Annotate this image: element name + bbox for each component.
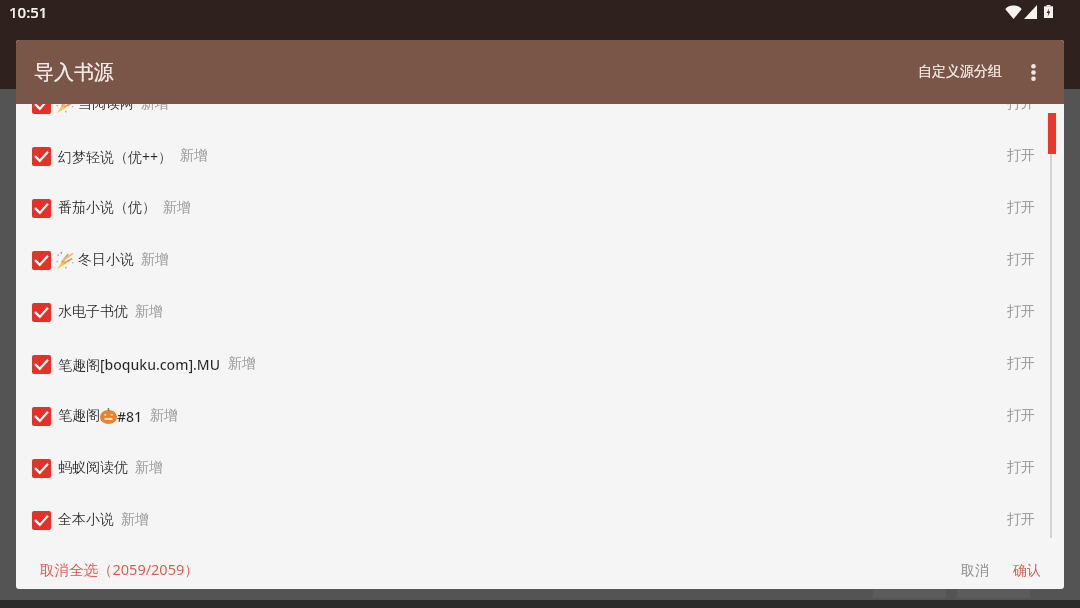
button[interactable]: 打开	[993, 104, 1049, 122]
button[interactable]: 自定义源分组	[903, 47, 1010, 97]
button[interactable]: 幻梦轻说（优++）	[16, 130, 1064, 182]
staticText: 打开	[1007, 147, 1035, 165]
staticText: 打开	[1007, 355, 1035, 373]
button[interactable]: 水电子书优	[16, 286, 1064, 338]
button[interactable]: 取消	[949, 552, 1001, 589]
button[interactable]: 确认	[1001, 552, 1053, 589]
staticText: 10:51	[9, 2, 48, 22]
staticText: 导入书源	[34, 60, 114, 85]
staticText: 打开	[1007, 104, 1035, 113]
staticText: 水电子书优	[58, 303, 128, 321]
staticText: 新增	[141, 104, 169, 113]
staticText: 番茄小说（优）	[58, 199, 156, 217]
button[interactable]: 蚂蚁阅读优	[16, 442, 1064, 494]
staticText: 全本小说	[58, 511, 114, 529]
staticText: 冬日小说	[78, 251, 134, 269]
staticText: 当阅读网	[78, 104, 134, 113]
button[interactable]: 打开	[993, 502, 1049, 538]
button[interactable]: 当阅读网	[16, 104, 1064, 130]
staticText: 新增	[180, 147, 208, 165]
staticText: 笔趣阁	[58, 407, 100, 425]
staticText: 笔趣阁[boquku.com].MU	[58, 355, 221, 374]
button[interactable]: 取消全选（2059/2059）	[16, 549, 223, 589]
staticText: 蚂蚁阅读优	[58, 459, 128, 477]
staticText: 新增	[228, 355, 256, 373]
staticText: 新增	[135, 459, 163, 477]
staticText: 新增	[141, 251, 169, 269]
staticText: 新增	[163, 199, 191, 217]
staticText: 新增	[135, 303, 163, 321]
button[interactable]: 笔趣阁	[16, 390, 1064, 442]
button[interactable]: 打开	[993, 138, 1049, 174]
button[interactable]: 打开	[993, 346, 1049, 382]
button[interactable]: 打开	[993, 450, 1049, 486]
staticText: 打开	[1007, 511, 1035, 529]
staticText: #81	[117, 407, 143, 426]
button[interactable]: 打开	[993, 190, 1049, 226]
button[interactable]: 笔趣阁[boquku.com].MU	[16, 338, 1064, 390]
staticText: 新增	[121, 511, 149, 529]
button[interactable]: 冬日小说	[16, 234, 1064, 286]
button[interactable]: 打开	[993, 294, 1049, 330]
button[interactable]: 打开	[993, 398, 1049, 434]
button[interactable]: 全本小说	[16, 494, 1064, 546]
staticText: 打开	[1007, 199, 1035, 217]
staticText: 自定义源分组	[918, 63, 1002, 81]
staticText: 幻梦轻说（优++）	[58, 147, 173, 166]
staticText: 取消全选（2059/2059）	[40, 559, 199, 579]
button[interactable]: 番茄小说（优）	[16, 182, 1064, 234]
staticText: 打开	[1007, 459, 1035, 477]
staticText: 新增	[150, 407, 178, 425]
staticText: 打开	[1007, 407, 1035, 425]
button[interactable]: More options	[1010, 49, 1056, 95]
staticText: 打开	[1007, 303, 1035, 321]
button[interactable]: 打开	[993, 242, 1049, 278]
staticText: 确认	[1013, 562, 1041, 580]
staticText: 取消	[961, 562, 989, 580]
staticText: 打开	[1007, 251, 1035, 269]
